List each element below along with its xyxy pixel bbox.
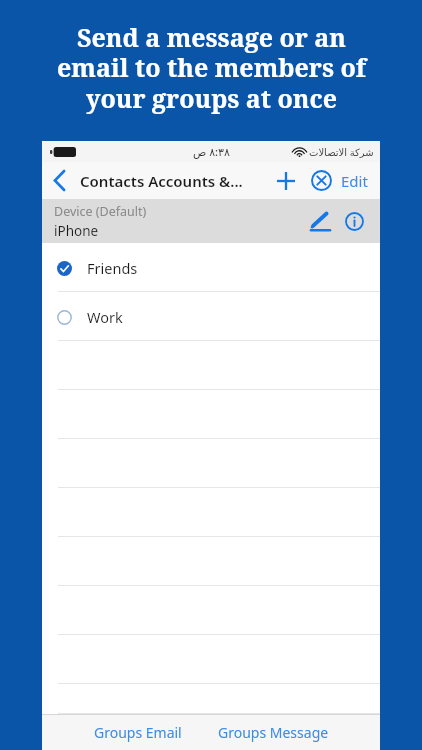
- button[interactable]: Clear: [303, 162, 339, 199]
- button[interactable]: Back: [42, 162, 76, 199]
- button[interactable]: Edit device: [304, 205, 336, 237]
- staticText: Work: [87, 307, 123, 327]
- button[interactable]: Edit: [339, 162, 380, 199]
- staticText: ٨:٣٨ ص: [193, 144, 230, 159]
- button[interactable]: Work: [42, 292, 380, 341]
- staticText: Groups Email: [94, 723, 182, 742]
- button[interactable]: Friends: [42, 243, 380, 292]
- staticText: Edit: [341, 171, 368, 191]
- staticText: Friends: [87, 258, 138, 278]
- staticText: Device (Default): [54, 203, 147, 220]
- staticText: Send a message or an email to the member…: [57, 20, 366, 116]
- button[interactable]: Add group: [269, 162, 303, 199]
- button[interactable]: Groups Message: [208, 717, 339, 748]
- staticText: Groups Message: [218, 723, 329, 742]
- staticText: شركة الاتصالات: [309, 145, 374, 159]
- button[interactable]: Device info: [338, 205, 370, 237]
- staticText: Contacts Accounts &...: [80, 171, 243, 191]
- staticText: iPhone: [54, 222, 99, 240]
- button[interactable]: Groups Email: [84, 717, 192, 748]
